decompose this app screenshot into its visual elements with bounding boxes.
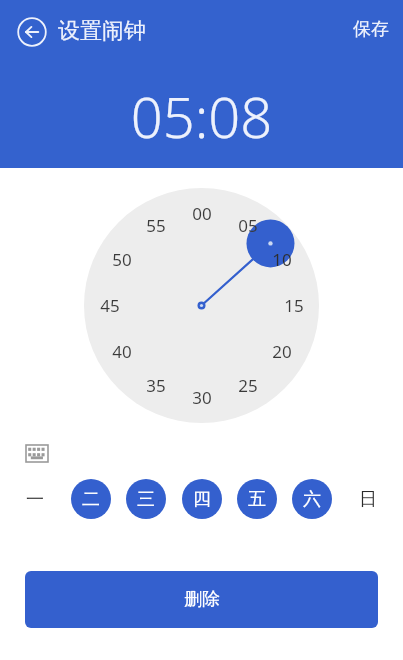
staticText: 05:08 xyxy=(0,78,403,154)
staticText: 00 xyxy=(192,202,212,225)
staticText: 四 xyxy=(193,488,211,511)
staticText: 30 xyxy=(192,386,212,409)
staticText: 设置闹钟 xyxy=(58,17,146,45)
button[interactable]: 保存 xyxy=(339,14,403,45)
staticText: 15 xyxy=(284,294,304,317)
button[interactable]: 六 xyxy=(292,479,332,519)
button[interactable]: 删除 xyxy=(25,571,378,628)
staticText: 六 xyxy=(303,488,321,511)
staticText: 45 xyxy=(100,294,120,317)
button[interactable]: Minute dial xyxy=(84,188,319,423)
staticText: 25 xyxy=(238,374,258,397)
staticText: 三 xyxy=(137,488,155,511)
button[interactable]: Back xyxy=(14,14,50,50)
staticText: 二 xyxy=(82,488,100,511)
staticText: 05 xyxy=(238,214,258,237)
button[interactable]: 二 xyxy=(71,479,111,519)
button[interactable]: 三 xyxy=(126,479,166,519)
button[interactable]: 四 xyxy=(182,479,222,519)
staticText: 40 xyxy=(112,340,132,363)
staticText: 五 xyxy=(248,488,266,511)
staticText: 35 xyxy=(146,374,166,397)
staticText: 20 xyxy=(272,340,292,363)
button[interactable]: 一 xyxy=(15,479,55,519)
button[interactable]: 日 xyxy=(348,479,388,519)
staticText: 10 xyxy=(272,248,292,271)
staticText: 50 xyxy=(112,248,132,271)
staticText: 一 xyxy=(26,488,44,511)
staticText: 日 xyxy=(359,488,377,511)
staticText: 保存 xyxy=(353,18,389,41)
staticText: 55 xyxy=(146,214,166,237)
button[interactable]: Switch to keyboard input xyxy=(22,438,52,468)
button[interactable]: 五 xyxy=(237,479,277,519)
staticText: 删除 xyxy=(184,588,220,611)
